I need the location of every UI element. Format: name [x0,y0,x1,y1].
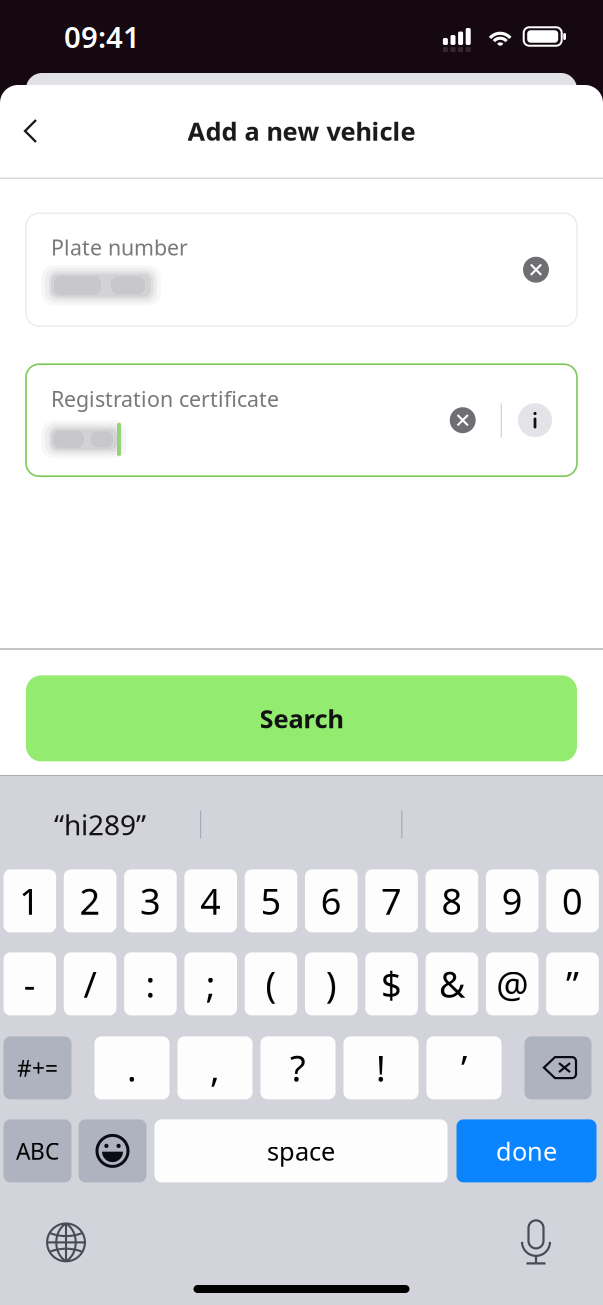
button[interactable]: 5 [245,869,297,932]
staticText: 2 [80,877,101,925]
button[interactable]: #+= [3,1036,71,1099]
staticText: ’ [461,1044,467,1092]
button[interactable]: $ [365,952,418,1015]
button[interactable]: , [177,1036,252,1099]
button[interactable]: ABC [3,1119,71,1182]
staticText: 9 [502,877,523,925]
button[interactable]: & [426,952,478,1015]
button[interactable]: 1 [3,869,56,932]
button[interactable]: Emoji [78,1119,146,1182]
staticText: space [267,1134,335,1168]
button[interactable]: space [154,1119,447,1182]
staticText: #+= [17,1053,58,1083]
button[interactable]: 9 [486,869,538,932]
staticText: , [210,1044,220,1092]
staticText: / [84,960,97,1008]
staticText: Registration certificate [51,384,279,413]
staticText: ) [326,960,337,1008]
staticText: . [127,1044,137,1092]
button[interactable]: ! [343,1036,418,1099]
button[interactable]: Change keyboard [41,1217,91,1267]
staticText: “hi289” [54,806,146,843]
button[interactable]: Backspace [524,1036,591,1099]
button[interactable]: done [456,1119,596,1182]
button[interactable]: Search [26,675,577,761]
staticText: ? [290,1044,306,1092]
button[interactable]: - [3,952,56,1015]
button[interactable]: 8 [426,869,478,932]
staticText: : [145,960,155,1008]
button[interactable]: Clear text [444,401,482,439]
staticText: 5 [260,877,281,925]
staticText: ” [566,960,579,1008]
staticText: 3 [140,877,161,925]
button[interactable]: 0 [546,869,599,932]
staticText: ABC [16,1136,59,1166]
staticText: @ [496,960,528,1008]
staticText: 6 [321,877,342,925]
button[interactable]: : [124,952,177,1015]
button[interactable]: 3 [124,869,177,932]
button[interactable]: ( [245,952,297,1015]
staticText: 1 [19,877,40,925]
button[interactable]: / [64,952,116,1015]
button[interactable]: Information [516,401,554,439]
staticText: 0 [562,877,583,925]
staticText: - [24,960,36,1008]
button[interactable]: ” [546,952,599,1015]
staticText: 09:41 [64,17,140,56]
button[interactable]: ? [260,1036,335,1099]
staticText: ! [376,1044,386,1092]
button[interactable]: ; [184,952,237,1015]
staticText: done [496,1134,557,1168]
staticText: ; [206,960,216,1008]
staticText: Plate number [51,233,188,261]
button[interactable]: ’ [426,1036,501,1099]
button[interactable]: Dictate [511,1217,561,1267]
button[interactable]: 4 [184,869,237,932]
button[interactable]: @ [486,952,538,1015]
staticText: ( [265,960,276,1008]
staticText: 4 [200,877,221,925]
button[interactable]: 7 [365,869,418,932]
staticText: Search [259,702,343,735]
staticText: Add a new vehicle [187,114,415,148]
staticText: 8 [441,877,462,925]
staticText: 7 [381,877,402,925]
button[interactable]: . [94,1036,169,1099]
staticText: $ [381,960,402,1008]
button[interactable]: ) [305,952,358,1015]
button[interactable]: 6 [305,869,358,932]
staticText: & [439,960,465,1008]
button[interactable]: Back [8,106,53,156]
button[interactable]: 2 [64,869,116,932]
button[interactable]: Clear text [517,251,555,289]
